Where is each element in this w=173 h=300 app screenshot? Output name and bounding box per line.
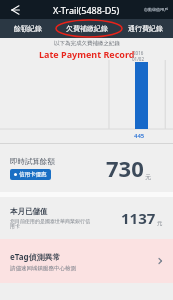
button[interactable]: 欠費補繳紀錄 xyxy=(56,19,117,38)
staticText: 餘額紀錄 xyxy=(14,24,42,33)
staticText: 請儘速回城鎮服務中心檢測 xyxy=(10,265,76,272)
button[interactable]: 餘額紀錄 xyxy=(0,19,56,38)
staticText: 元 xyxy=(157,220,163,227)
button[interactable]: 自動儲值用戶 xyxy=(144,7,168,12)
button[interactable]: 即時試算餘額 xyxy=(0,144,173,192)
staticText: 欠費補繳紀錄 xyxy=(66,24,108,33)
button[interactable]: 通行費紀錄 xyxy=(117,19,173,38)
button[interactable]: Back xyxy=(6,2,22,18)
staticText: 445 xyxy=(134,132,145,140)
staticText: 1137 xyxy=(121,208,156,228)
other: Details xyxy=(155,256,165,266)
staticText: 01/02 xyxy=(132,56,144,62)
staticText: X-Trail(5488-D5) xyxy=(53,4,120,16)
staticText: 元 xyxy=(145,173,151,181)
button[interactable]: eTag偵測異常 xyxy=(0,239,173,283)
staticText: 以下為完成欠費補繳之紀錄 xyxy=(54,40,120,47)
staticText: 信用卡優惠 xyxy=(19,171,47,178)
staticText: 2016 xyxy=(133,50,144,56)
staticText: eTag偵測異常 xyxy=(10,251,61,262)
staticText: 本月已儲值 xyxy=(10,207,48,216)
staticText: 通行費紀錄 xyxy=(128,24,163,33)
staticText: 您目前使用的是國泰世華商業銀行信用卡 xyxy=(10,218,90,230)
staticText: 即時試算餘額 xyxy=(10,157,55,166)
button[interactable]: 本月已儲值 xyxy=(0,197,173,239)
staticText: 730 xyxy=(106,153,144,183)
staticText: Late Payment Record xyxy=(39,48,135,60)
